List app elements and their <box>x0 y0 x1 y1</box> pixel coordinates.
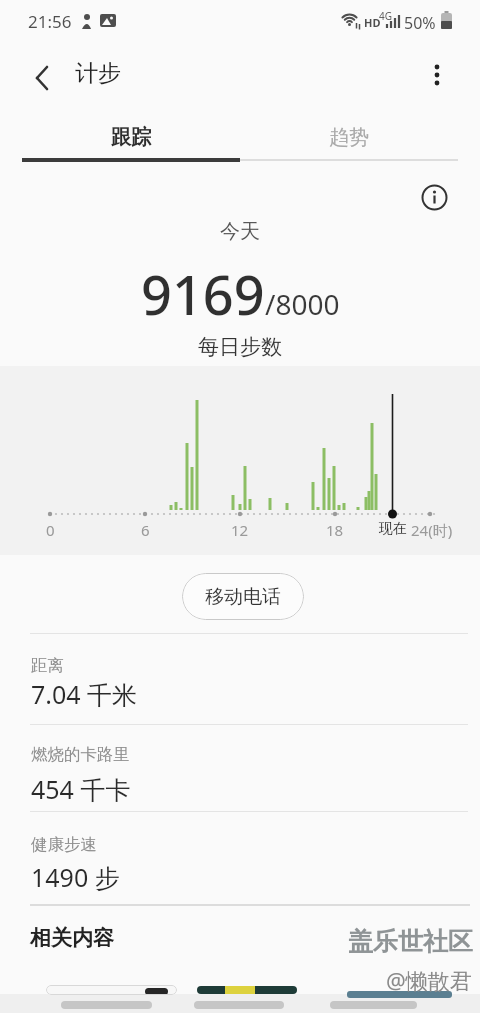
staticText: 18 <box>326 520 344 540</box>
staticText: 移动电话 <box>205 585 281 609</box>
staticText: 1490 步 <box>31 860 120 894</box>
staticText: 9169 <box>141 257 265 331</box>
staticText: 21:56 <box>28 10 72 33</box>
staticText: 距离 <box>31 655 64 676</box>
staticText: 现在 <box>379 520 407 538</box>
button[interactable] <box>0 647 480 717</box>
staticText: 趋势 <box>329 125 369 150</box>
button[interactable] <box>421 184 448 211</box>
button[interactable]: 趋势 <box>240 109 458 165</box>
staticText: 7.04 千米 <box>31 677 138 711</box>
button[interactable] <box>0 826 480 900</box>
staticText: 计步 <box>75 59 121 88</box>
button[interactable] <box>347 991 452 998</box>
staticText: 50% <box>404 12 436 34</box>
staticText: 今天 <box>0 219 480 244</box>
staticText: 24(时) <box>411 520 453 540</box>
staticText: 4G <box>379 9 392 23</box>
button[interactable]: 跟踪 <box>22 109 240 165</box>
button[interactable] <box>197 986 297 994</box>
staticText: 0 <box>46 520 55 540</box>
staticText: 健康步速 <box>31 834 97 855</box>
staticText: 盖乐世社区 <box>348 926 473 957</box>
staticText: 6 <box>141 520 150 540</box>
staticText: /8000 <box>265 285 340 323</box>
staticText: 跟踪 <box>111 125 151 150</box>
staticText: 454 千卡 <box>31 772 131 806</box>
staticText: HD <box>364 15 381 30</box>
staticText: 每日步数 <box>0 334 480 360</box>
staticText: @懒散君 <box>386 965 472 995</box>
button[interactable] <box>46 985 177 995</box>
staticText: 相关内容 <box>30 925 114 951</box>
button[interactable] <box>34 66 50 90</box>
staticText: 燃烧的卡路里 <box>31 744 130 765</box>
button[interactable] <box>427 57 447 93</box>
button[interactable]: 移动电话 <box>182 573 304 620</box>
staticText: 12 <box>231 520 249 540</box>
button[interactable] <box>0 736 480 812</box>
